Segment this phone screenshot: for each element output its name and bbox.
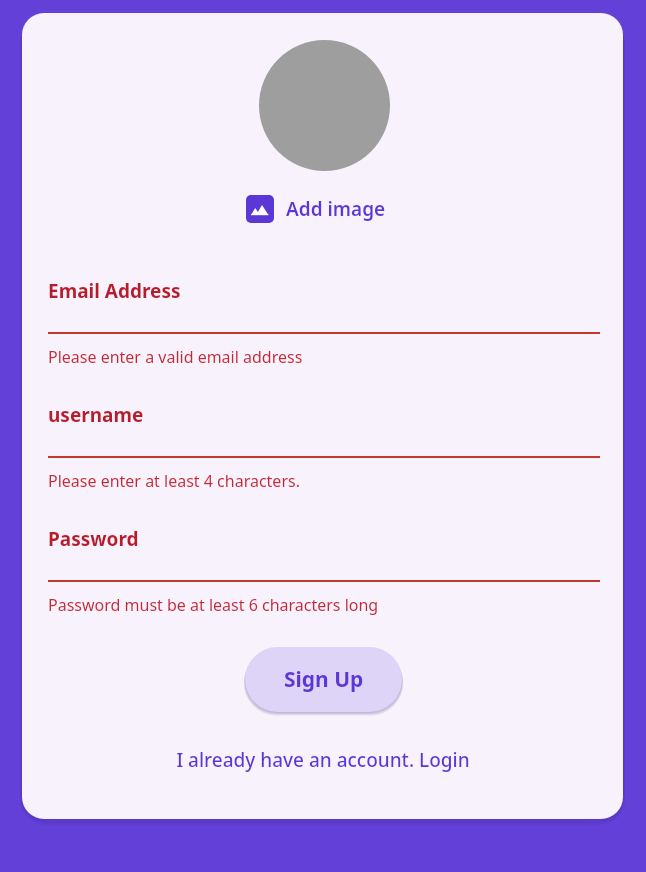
staticText: Email Address xyxy=(48,278,181,304)
button[interactable]: Sign Up xyxy=(245,647,402,712)
staticText: I already have an account. Login xyxy=(176,747,470,773)
other: Add image xyxy=(246,195,274,223)
button[interactable]: I already have an account. Login xyxy=(22,742,623,778)
staticText: username xyxy=(48,402,144,428)
staticText: Add image xyxy=(286,196,386,222)
staticText: Sign Up xyxy=(284,665,364,694)
staticText: Please enter a valid email address xyxy=(48,346,303,368)
staticText: Please enter at least 4 characters. xyxy=(48,470,300,492)
staticText: Password must be at least 6 characters l… xyxy=(48,594,379,616)
button[interactable]: Add image xyxy=(244,191,388,227)
staticText: Password xyxy=(48,526,139,552)
